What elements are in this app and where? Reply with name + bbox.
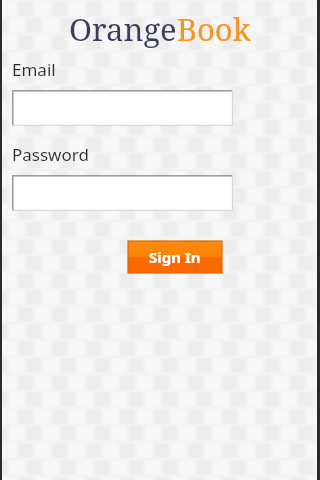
staticText: Sign In: [149, 247, 201, 267]
button[interactable]: Text input field: [12, 90, 233, 126]
button[interactable]: Text input field: [12, 175, 233, 211]
button[interactable]: Sign In: [128, 241, 222, 273]
staticText: Password: [12, 143, 89, 166]
staticText: OrangeBook: [69, 8, 251, 50]
staticText: Email: [12, 58, 56, 81]
